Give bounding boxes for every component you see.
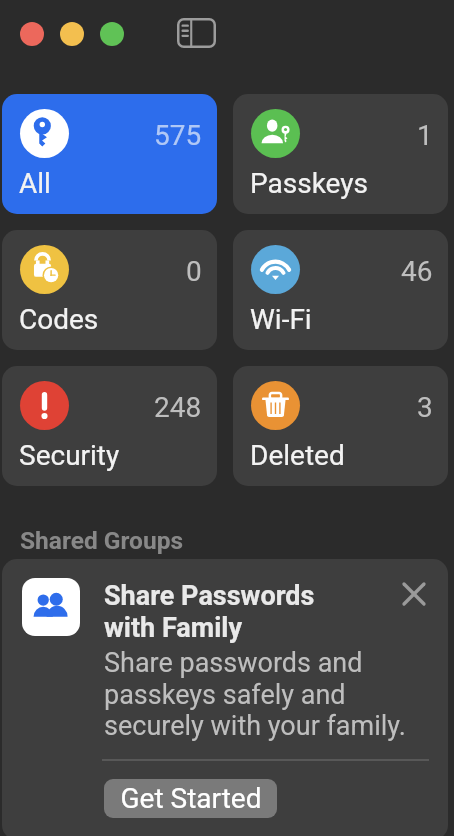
button[interactable]: Minimize window (60, 22, 84, 46)
staticText: Security (19, 439, 120, 472)
button[interactable]: Get Started (104, 779, 277, 818)
button[interactable]: Toggle sidebar (169, 10, 224, 55)
staticText: All (19, 167, 51, 200)
button[interactable]: 1 (233, 94, 448, 214)
staticText: Get Started (120, 782, 262, 815)
staticText: Passkeys (250, 167, 368, 200)
staticText: Share passwords and passkeys safely and … (104, 647, 406, 741)
button[interactable]: 248 (2, 366, 217, 486)
staticText: Deleted (250, 439, 345, 472)
staticText: 575 (154, 119, 202, 152)
staticText: Shared Groups (20, 526, 183, 555)
button[interactable]: 0 (2, 230, 217, 350)
staticText: 46 (401, 255, 433, 288)
staticText: 1 (417, 119, 433, 152)
staticText: Share Passwords with Family (104, 580, 315, 643)
staticText: Wi-Fi (250, 303, 312, 336)
staticText: 248 (154, 391, 202, 424)
staticText: 0 (186, 255, 202, 288)
button[interactable]: 575 (2, 94, 217, 214)
staticText: 3 (417, 391, 433, 424)
button[interactable]: Dismiss (392, 572, 436, 616)
button[interactable]: Maximize window (100, 22, 124, 46)
button[interactable]: 46 (233, 230, 448, 350)
button[interactable]: 3 (233, 366, 448, 486)
staticText: Codes (19, 303, 99, 336)
button[interactable]: Close window (20, 22, 44, 46)
